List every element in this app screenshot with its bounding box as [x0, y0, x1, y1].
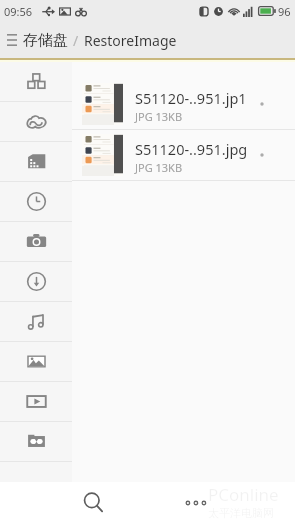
button[interactable]: Cloud: [0, 102, 72, 141]
button[interactable]: Apps: [0, 62, 72, 101]
staticText: 09:56: [4, 4, 33, 19]
button[interactable]: Archives: [0, 422, 72, 461]
button[interactable]: Search: [74, 483, 114, 523]
staticText: 存储盘: [23, 31, 68, 50]
button[interactable]: Music: [0, 302, 72, 341]
button[interactable]: More options: [251, 93, 273, 115]
button[interactable]: Videos: [0, 382, 72, 421]
button[interactable]: Images: [0, 342, 72, 381]
button[interactable]: Downloads: [0, 262, 72, 301]
staticText: /: [73, 31, 79, 50]
staticText: S51120-..951.jp1: [135, 88, 247, 108]
staticText: 96: [278, 4, 291, 19]
button[interactable]: Documents: [0, 142, 72, 181]
staticText: JPG 13KB: [135, 160, 183, 175]
staticText: PConline: [208, 483, 279, 506]
button[interactable]: Camera: [0, 222, 72, 261]
staticText: RestoreImage: [84, 31, 177, 50]
button[interactable]: S51120-..951.jp1: [72, 79, 295, 129]
button[interactable]: More options: [180, 486, 212, 520]
button[interactable]: Menu: [0, 22, 23, 58]
staticText: 太平洋电脑网: [208, 506, 274, 520]
staticText: S51120-..951.jpg: [135, 139, 248, 159]
button[interactable]: S51120-..951.jpg: [72, 130, 295, 180]
button[interactable]: Recent: [0, 182, 72, 221]
button[interactable]: More options: [251, 144, 273, 166]
staticText: JPG 13KB: [135, 109, 183, 124]
